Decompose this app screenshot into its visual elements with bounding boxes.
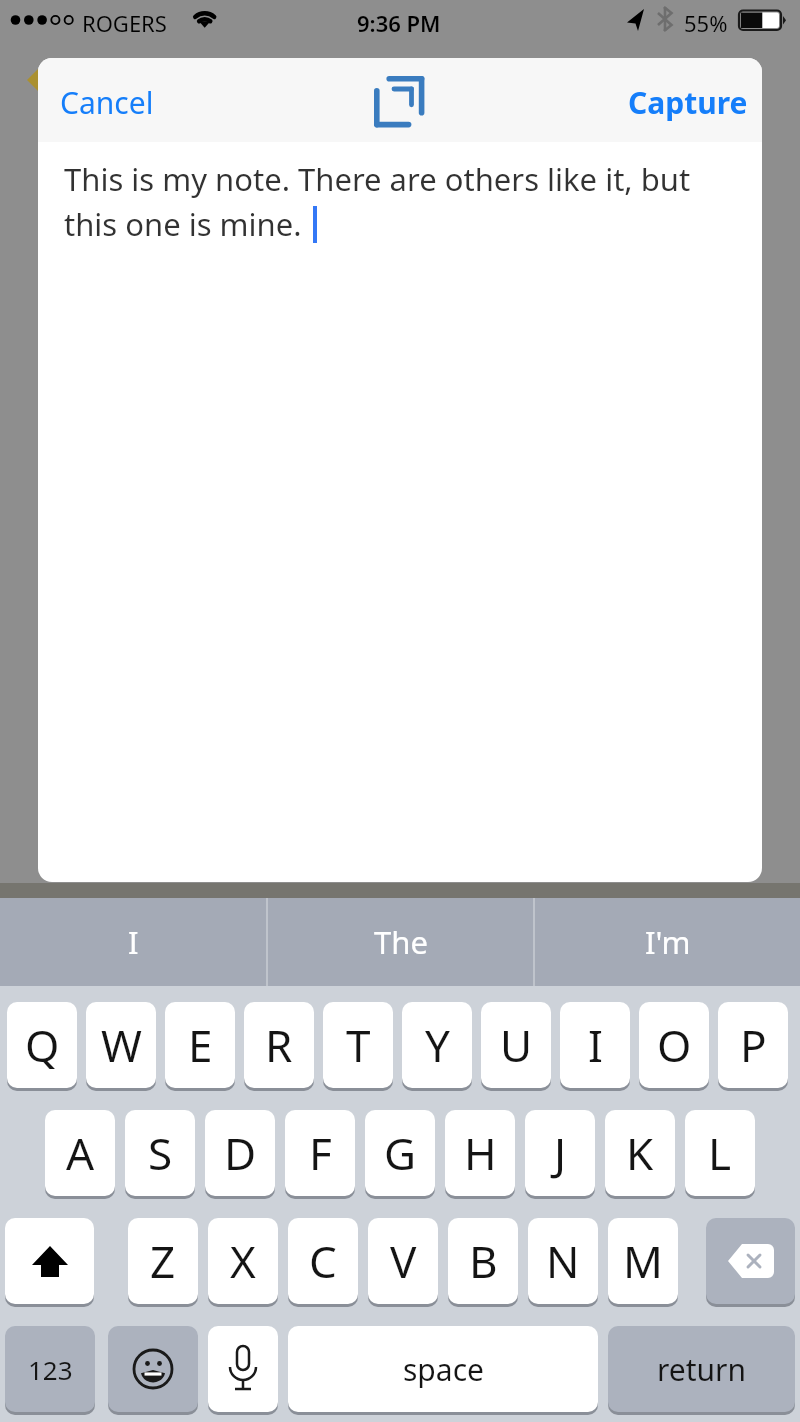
button[interactable]: G <box>365 1110 435 1196</box>
button[interactable]: F <box>285 1110 355 1196</box>
button[interactable]: P <box>718 1002 788 1088</box>
staticText: U <box>500 1015 533 1075</box>
staticText: O <box>657 1015 692 1075</box>
button[interactable]: space <box>288 1326 598 1412</box>
staticText: X <box>230 1231 256 1291</box>
staticText: Z <box>150 1231 176 1291</box>
button[interactable] <box>372 74 426 130</box>
staticText: V <box>390 1231 417 1291</box>
staticText: M <box>623 1231 663 1291</box>
staticText: C <box>309 1231 337 1291</box>
button[interactable]: C <box>288 1218 358 1304</box>
button[interactable]: M <box>608 1218 678 1304</box>
button[interactable]: I'm <box>535 898 800 986</box>
button[interactable]: Capture <box>618 80 758 124</box>
staticText: The <box>374 921 428 963</box>
button[interactable] <box>108 1326 198 1412</box>
staticText: F <box>309 1123 332 1183</box>
staticText: H <box>464 1123 497 1183</box>
staticText: S <box>148 1123 173 1183</box>
button[interactable]: I <box>0 898 266 986</box>
staticText: W <box>101 1015 142 1075</box>
staticText: B <box>469 1231 498 1291</box>
button[interactable]: E <box>165 1002 235 1088</box>
button[interactable]: Q <box>7 1002 77 1088</box>
button[interactable]: return <box>608 1326 795 1412</box>
button[interactable] <box>208 1326 278 1412</box>
button[interactable]: O <box>639 1002 709 1088</box>
button[interactable]: H <box>445 1110 515 1196</box>
button[interactable]: Cancel <box>46 80 168 124</box>
staticText: 55% <box>684 8 728 38</box>
button[interactable]: I <box>560 1002 630 1088</box>
button[interactable]: U <box>481 1002 551 1088</box>
staticText: I'm <box>645 921 691 963</box>
button[interactable]: 123 <box>5 1326 95 1412</box>
button[interactable]: X <box>208 1218 278 1304</box>
button[interactable]: L <box>685 1110 755 1196</box>
button[interactable]: N <box>528 1218 598 1304</box>
staticText: Cancel <box>60 82 154 123</box>
button[interactable]: D <box>205 1110 275 1196</box>
staticText: E <box>188 1015 213 1075</box>
button[interactable]: The <box>268 898 533 986</box>
staticText: A <box>66 1123 95 1183</box>
staticText: ROGERS <box>82 8 167 38</box>
button[interactable]: B <box>448 1218 518 1304</box>
staticText: K <box>626 1123 654 1183</box>
button[interactable]: R <box>244 1002 314 1088</box>
button[interactable] <box>5 1218 94 1304</box>
button[interactable]: W <box>86 1002 156 1088</box>
staticText: D <box>224 1123 257 1183</box>
staticText: R <box>265 1015 293 1075</box>
staticText: return <box>657 1349 747 1390</box>
button[interactable]: A <box>45 1110 115 1196</box>
button[interactable]: S <box>125 1110 195 1196</box>
button[interactable] <box>706 1218 795 1304</box>
button[interactable]: V <box>368 1218 438 1304</box>
staticText: I <box>588 1015 603 1075</box>
button[interactable]: J <box>525 1110 595 1196</box>
staticText: 9:36 PM <box>357 8 441 38</box>
button[interactable]: Z <box>128 1218 198 1304</box>
staticText: 123 <box>28 1352 73 1387</box>
staticText: Y <box>425 1015 450 1075</box>
button[interactable]: K <box>605 1110 675 1196</box>
staticText: Capture <box>628 82 748 123</box>
staticText: I <box>128 921 139 963</box>
staticText: This is my note. There are others like i… <box>64 158 691 245</box>
staticText: T <box>346 1015 371 1075</box>
staticText: J <box>554 1123 567 1183</box>
staticText: space <box>403 1349 484 1390</box>
staticText: Q <box>25 1015 60 1075</box>
button[interactable]: T <box>323 1002 393 1088</box>
staticText: G <box>384 1123 417 1183</box>
staticText: L <box>708 1123 732 1183</box>
button[interactable]: Y <box>402 1002 472 1088</box>
staticText: N <box>546 1231 580 1291</box>
staticText: P <box>740 1015 767 1075</box>
